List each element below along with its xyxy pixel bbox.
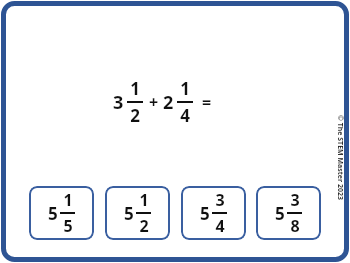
- staticText: 3: [290, 189, 300, 211]
- staticText: 2: [139, 215, 149, 237]
- staticText: 5: [200, 202, 210, 225]
- staticText: © The STEM Master 2023: [335, 115, 345, 200]
- staticText: 2: [130, 104, 140, 127]
- staticText: 4: [215, 215, 225, 237]
- staticText: 1: [63, 189, 73, 211]
- staticText: 2: [163, 90, 174, 115]
- button[interactable]: Answer 5 and 1 over 5: [29, 186, 94, 240]
- staticText: 4: [180, 104, 190, 127]
- staticText: =: [202, 91, 212, 113]
- staticText: 5: [275, 202, 285, 225]
- button[interactable]: Answer 5 and 3 over 4: [181, 186, 246, 240]
- staticText: 8: [290, 215, 300, 237]
- staticText: 3: [215, 189, 225, 211]
- staticText: 1: [139, 189, 149, 211]
- staticText: 5: [124, 202, 134, 225]
- staticText: 3: [113, 90, 124, 115]
- staticText: 5: [48, 202, 58, 225]
- button[interactable]: Answer 5 and 1 over 2: [105, 186, 170, 240]
- staticText: 1: [180, 77, 190, 100]
- staticText: +: [149, 91, 159, 113]
- staticText: 5: [63, 215, 73, 237]
- button[interactable]: Answer 5 and 3 over 8: [256, 186, 321, 240]
- staticText: 1: [130, 77, 140, 100]
